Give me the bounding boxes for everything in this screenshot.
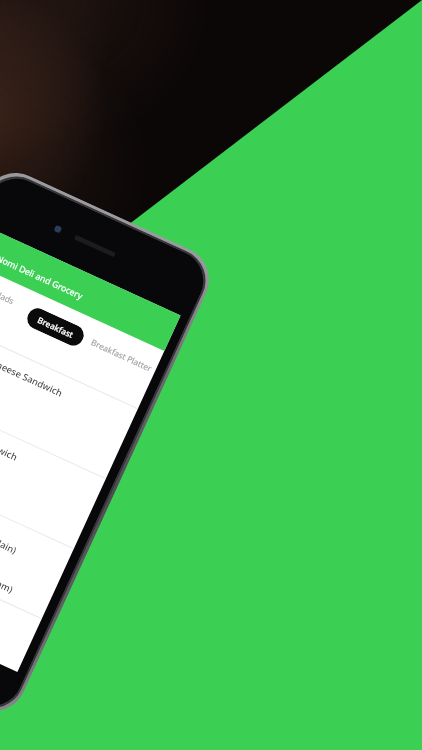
staticText: Ham & Cheese Omelette (Plain) — [0, 487, 19, 557]
button[interactable]: Breakfast Platter — [89, 336, 154, 374]
button[interactable]: Egg and Cheese Sandwich — [0, 320, 138, 478]
staticText: Nomi Deli and Grocery — [0, 252, 85, 302]
button[interactable]: Breakfast — [24, 305, 87, 349]
staticText: Breakfast Platter — [89, 336, 154, 374]
staticText: Salads — [0, 286, 17, 306]
staticText: Egg and Cheese Sandwich — [0, 340, 65, 400]
button[interactable]: Salads — [0, 286, 17, 306]
staticText: Spinach & Cheese Omelette (Ham) — [0, 521, 16, 596]
button[interactable]: Ham & Cheese Omelette (Plain) — [0, 460, 74, 618]
button[interactable]: Nomi Deli and Grocery — [0, 226, 181, 351]
button[interactable]: Sausage Egg Sandwich — [0, 390, 106, 548]
staticText: Breakfast — [36, 314, 76, 340]
button[interactable]: Pancakes with Butter (Plain) — [0, 530, 41, 672]
staticText: Sausage Egg Sandwich — [0, 410, 20, 464]
